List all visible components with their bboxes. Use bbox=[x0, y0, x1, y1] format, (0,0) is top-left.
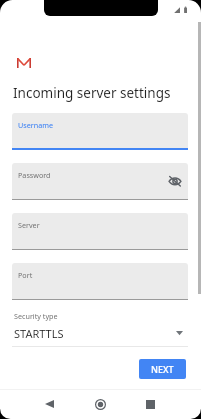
button[interactable]: Server bbox=[12, 213, 188, 250]
staticText: Server bbox=[18, 220, 40, 230]
staticText: Password bbox=[18, 170, 51, 180]
button[interactable]: Show password bbox=[168, 174, 182, 188]
button[interactable]: Username bbox=[12, 113, 188, 150]
staticText: Incoming server settings bbox=[13, 84, 171, 102]
button[interactable]: Home bbox=[84, 391, 117, 417]
staticText: NEXT bbox=[151, 363, 174, 375]
button[interactable]: Back bbox=[33, 391, 66, 417]
button[interactable]: Security type bbox=[12, 310, 188, 347]
button[interactable]: Password bbox=[12, 163, 188, 200]
button[interactable]: Recent apps bbox=[134, 391, 167, 417]
staticText: Security type bbox=[14, 311, 58, 321]
staticText: Port bbox=[18, 270, 33, 280]
staticText: STARTTLS bbox=[14, 326, 64, 341]
button[interactable]: Port bbox=[12, 263, 188, 300]
staticText: Username bbox=[18, 120, 53, 130]
button[interactable]: NEXT bbox=[139, 359, 186, 379]
